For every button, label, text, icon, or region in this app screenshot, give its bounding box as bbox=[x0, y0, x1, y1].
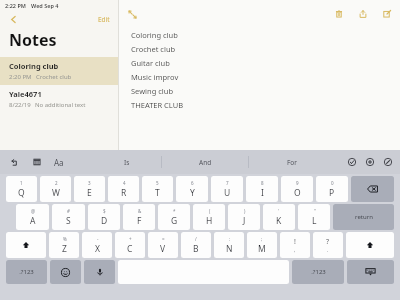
button[interactable]: Table bbox=[30, 155, 44, 169]
button[interactable]: ? bbox=[313, 232, 343, 258]
button[interactable]: 2 bbox=[40, 176, 71, 202]
staticText: O bbox=[294, 187, 301, 199]
button[interactable]: Compose bbox=[380, 7, 394, 21]
button[interactable]: Share bbox=[356, 7, 370, 21]
button[interactable]: Back bbox=[6, 12, 20, 26]
button[interactable]: Markup bbox=[382, 156, 394, 168]
button[interactable]: 3 bbox=[74, 176, 105, 202]
staticText: Guitar club bbox=[131, 58, 170, 68]
button[interactable]: # bbox=[52, 204, 85, 230]
staticText: Is bbox=[124, 158, 130, 167]
staticText: K bbox=[276, 215, 282, 227]
staticText: S bbox=[66, 215, 71, 227]
staticText: 5 bbox=[156, 180, 159, 186]
staticText: ? bbox=[326, 237, 330, 247]
staticText: 8/22/19 bbox=[9, 101, 31, 109]
button[interactable]: Delete bbox=[332, 7, 346, 21]
button[interactable]: Dictation bbox=[84, 260, 115, 284]
button[interactable]: return bbox=[333, 204, 394, 230]
staticText: E bbox=[87, 187, 92, 199]
button[interactable]: .?123 bbox=[292, 260, 344, 284]
button[interactable]: And bbox=[162, 150, 248, 174]
staticText: 9 bbox=[296, 180, 299, 186]
staticText: 7 bbox=[226, 180, 229, 186]
button[interactable]: 7 bbox=[211, 176, 243, 202]
button[interactable]: - bbox=[82, 232, 112, 258]
button[interactable]: $ bbox=[88, 204, 120, 230]
button[interactable]: & bbox=[123, 204, 155, 230]
button[interactable]: ! bbox=[280, 232, 310, 258]
button[interactable]: / bbox=[181, 232, 211, 258]
staticText: ; bbox=[261, 236, 263, 242]
button[interactable]: .?123 bbox=[6, 260, 47, 284]
button[interactable]: Shift bbox=[346, 232, 394, 258]
staticText: L bbox=[312, 215, 317, 227]
staticText: Music improv bbox=[131, 72, 179, 82]
staticText: 6 bbox=[191, 180, 194, 186]
button[interactable]: 0 bbox=[316, 176, 348, 202]
button[interactable]: Add bbox=[364, 156, 376, 168]
staticText: * bbox=[173, 208, 176, 214]
button[interactable]: Emoji bbox=[50, 260, 81, 284]
staticText: .?123 bbox=[19, 268, 34, 276]
button[interactable]: Expand bbox=[125, 7, 139, 21]
button[interactable]: Backspace bbox=[351, 176, 394, 202]
staticText: + bbox=[129, 236, 132, 242]
button[interactable]: Hide keyboard bbox=[347, 260, 394, 284]
staticText: .?123 bbox=[311, 268, 326, 276]
button[interactable]: Aa bbox=[52, 155, 66, 170]
button[interactable]: = bbox=[148, 232, 178, 258]
staticText: " bbox=[314, 208, 316, 214]
button[interactable]: * bbox=[158, 204, 190, 230]
staticText: THEATER CLUB bbox=[131, 100, 184, 110]
button[interactable]: Undo bbox=[7, 155, 21, 169]
staticText: $ bbox=[103, 208, 106, 214]
staticText: ! bbox=[294, 237, 296, 247]
button[interactable]: 8 bbox=[246, 176, 278, 202]
button[interactable]: Checklist bbox=[346, 156, 358, 168]
staticText: # bbox=[67, 208, 70, 214]
staticText: ( bbox=[209, 208, 211, 214]
button[interactable]: ; bbox=[247, 232, 277, 258]
staticText: Coloring club bbox=[9, 61, 59, 71]
staticText: For bbox=[287, 158, 297, 167]
button[interactable]: Yale4671 bbox=[0, 85, 118, 113]
button[interactable]: 6 bbox=[176, 176, 208, 202]
button[interactable]: Coloring club bbox=[0, 57, 118, 85]
staticText: @ bbox=[31, 208, 36, 214]
staticText: Crochet club bbox=[36, 73, 72, 81]
button[interactable]: " bbox=[298, 204, 330, 230]
button[interactable]: ( bbox=[193, 204, 225, 230]
staticText: Sewing club bbox=[131, 86, 174, 96]
staticText: % bbox=[63, 236, 67, 242]
staticText: 3 bbox=[88, 180, 91, 186]
staticText: return bbox=[355, 213, 373, 221]
button[interactable]: ) bbox=[228, 204, 260, 230]
staticText: F bbox=[137, 215, 142, 227]
button[interactable]: Is bbox=[93, 150, 161, 174]
button[interactable]: 5 bbox=[142, 176, 173, 202]
button[interactable]: 4 bbox=[108, 176, 139, 202]
button[interactable]: 1 bbox=[6, 176, 37, 202]
button[interactable]: For bbox=[249, 150, 335, 174]
button[interactable]: : bbox=[214, 232, 244, 258]
staticText: / bbox=[195, 236, 197, 242]
staticText: And bbox=[199, 158, 212, 167]
staticText: - bbox=[97, 236, 99, 242]
staticText: Z bbox=[62, 243, 67, 255]
button[interactable]: 9 bbox=[281, 176, 313, 202]
staticText: 2 bbox=[55, 180, 58, 186]
button[interactable]: ' bbox=[263, 204, 295, 230]
staticText: T bbox=[155, 187, 160, 199]
button[interactable]: Edit bbox=[96, 14, 112, 25]
button[interactable]: % bbox=[49, 232, 79, 258]
staticText: 8 bbox=[261, 180, 264, 186]
staticText: D bbox=[101, 215, 108, 227]
button[interactable]: @ bbox=[16, 204, 49, 230]
staticText: 1 bbox=[20, 180, 23, 186]
button[interactable]: Shift bbox=[6, 232, 46, 258]
button[interactable]: + bbox=[115, 232, 145, 258]
staticText: : bbox=[229, 236, 231, 242]
staticText: V bbox=[160, 243, 166, 255]
